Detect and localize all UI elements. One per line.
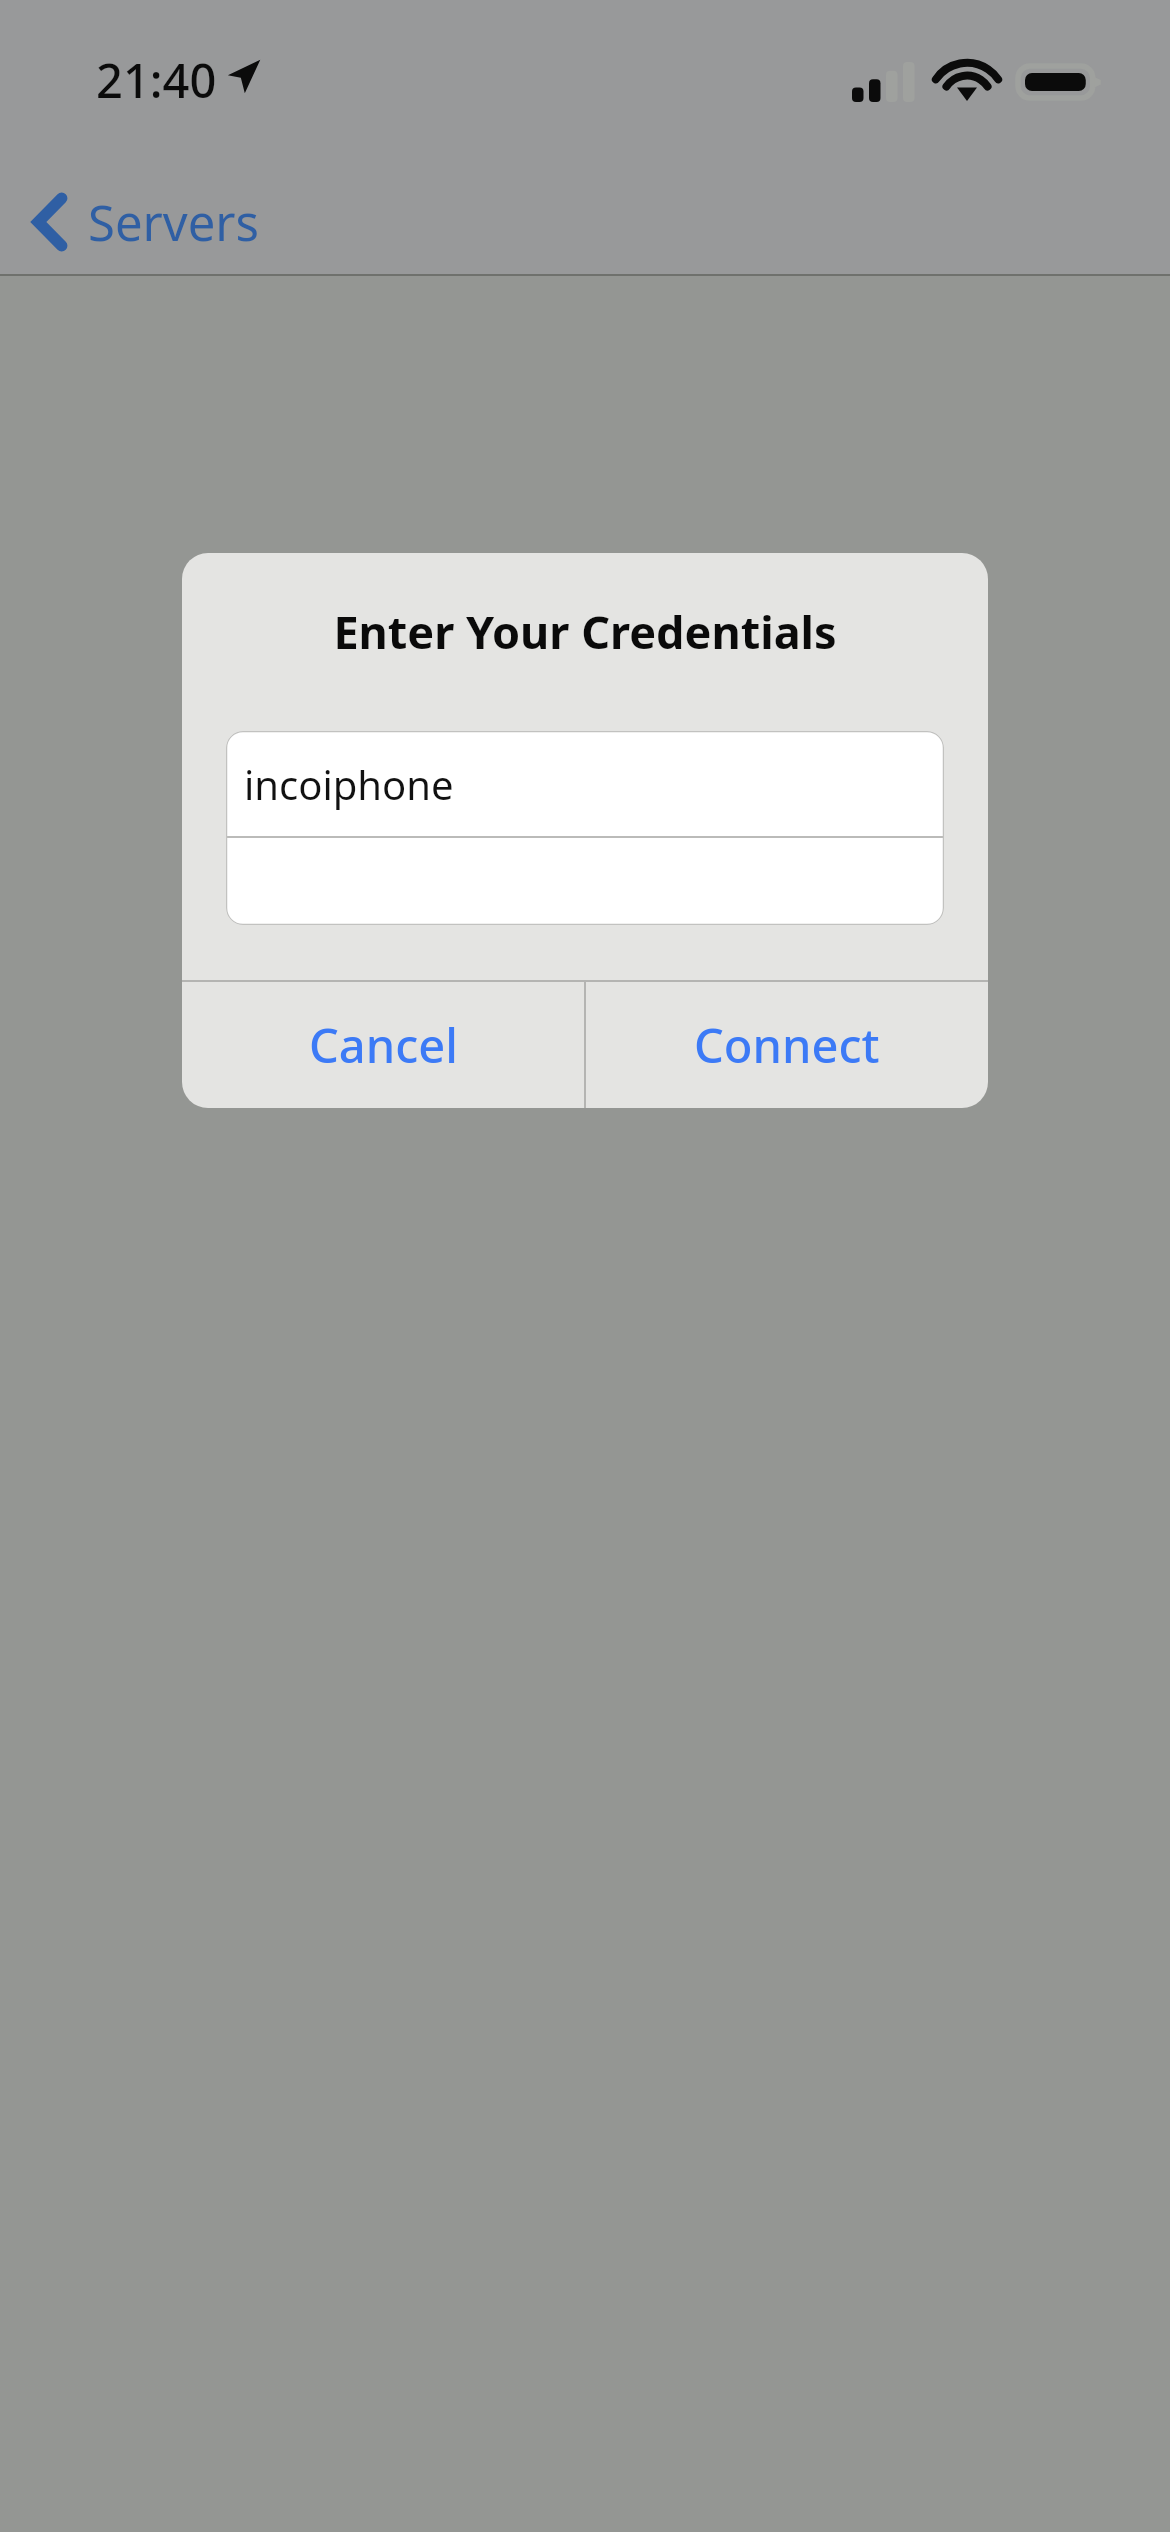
staticText: 21:40 xyxy=(96,48,217,104)
staticText: incoiphone xyxy=(244,757,454,811)
staticText: Cancel xyxy=(309,1013,458,1077)
button[interactable]: incoiphone xyxy=(226,731,944,836)
staticText: Servers xyxy=(88,189,260,256)
button[interactable]: Cancel xyxy=(182,982,584,1108)
button[interactable] xyxy=(226,838,944,925)
staticText: Enter Your Credentials xyxy=(182,601,988,662)
button[interactable]: Connect xyxy=(586,982,988,1108)
staticText: Connect xyxy=(694,1013,880,1077)
button[interactable]: Back to Servers xyxy=(8,170,280,274)
